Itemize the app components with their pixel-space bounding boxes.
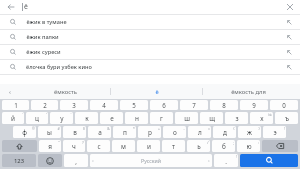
button[interactable]: Insert suggestion [278,45,300,59]
staticText: № [268,112,272,117]
button[interactable]: ф [13,126,36,138]
button[interactable]: Insert suggestion [278,60,300,74]
staticText: / [207,140,209,145]
button[interactable]: 4 [90,100,118,110]
button[interactable]: ш [175,112,198,124]
button[interactable]: ёлочка бури узбек кино [0,60,300,74]
button[interactable]: ж [238,126,261,138]
staticText: 3 [72,101,76,109]
button[interactable]: ёжик суреси [0,45,300,59]
button[interactable]: л [188,126,211,138]
button[interactable]: ь [187,140,210,152]
button[interactable]: ъ [275,112,298,124]
button[interactable]: о [163,126,186,138]
button[interactable]: 6 [150,100,178,110]
button[interactable]: ч [63,140,85,152]
staticText: 2 [43,101,47,109]
button[interactable]: т [162,140,185,152]
button[interactable]: ёжик в тумане [0,15,300,29]
staticText: + [158,126,160,131]
staticText: и [147,142,151,151]
button[interactable]: й [2,112,24,124]
staticText: ч [72,142,76,151]
button[interactable]: э [263,126,286,138]
staticText: х [260,114,264,123]
staticText: 5 [132,101,136,109]
staticText: к [85,114,89,123]
staticText: а [98,128,102,137]
button[interactable]: Insert suggestion [278,15,300,29]
button[interactable]: а [88,126,111,138]
button[interactable]: 2 [31,100,58,110]
button[interactable]: 3 [60,100,88,110]
button[interactable]: Clear query [280,0,300,14]
staticText: › [208,158,210,164]
button[interactable]: 7 [180,100,208,110]
button[interactable]: 1 [2,100,29,110]
button[interactable]: г [150,112,173,124]
button[interactable]: Back [0,0,22,14]
staticText: - [183,126,185,131]
staticText: ` [22,112,23,117]
button[interactable]: ы [38,126,61,138]
button[interactable]: 0 [270,100,298,110]
button[interactable]: з [225,112,248,124]
button[interactable]: п [113,126,136,138]
button[interactable]: Backspace [262,140,298,152]
button[interactable]: н [125,112,148,124]
button[interactable]: 123 [2,154,36,167]
button[interactable]: у [50,112,73,124]
staticText: $ [83,126,85,131]
button[interactable]: , [64,154,88,167]
staticText: , [75,157,77,165]
button[interactable]: . [214,154,238,167]
staticText: ёжик суреси [26,48,61,56]
button[interactable]: ёмкость [20,84,110,99]
button[interactable]: е [100,112,123,124]
staticText: л [198,128,202,137]
staticText: ! [284,126,285,131]
staticText: ‹ [92,158,94,164]
button[interactable]: Shift [2,140,37,152]
staticText: ъ [285,114,289,123]
button[interactable]: ё [111,84,202,99]
staticText: ‹ [9,88,11,96]
button[interactable]: ёжик палки [0,30,300,44]
button[interactable]: я [39,140,61,152]
staticText: Русский [141,157,161,164]
button[interactable]: 5 [120,100,148,110]
staticText: м [121,142,126,151]
button[interactable]: с [87,140,110,152]
button[interactable]: ёмкость для [203,84,294,99]
staticText: с [97,142,101,151]
button[interactable]: ю [237,140,260,152]
staticText: г [160,114,163,123]
button[interactable]: х [250,112,273,124]
button[interactable]: Search [240,154,298,167]
staticText: ф [22,128,27,137]
staticText: ё [155,88,159,96]
button[interactable]: щ [200,112,223,124]
button[interactable]: Insert suggestion [278,30,300,44]
staticText: в [73,128,77,137]
staticText: = [208,126,210,131]
button[interactable]: Русский [90,154,212,167]
button[interactable]: 9 [240,100,268,110]
button[interactable]: ц [26,112,48,124]
staticText: ёлочка бури узбек кино [26,63,92,71]
button[interactable]: к [75,112,98,124]
staticText: у [60,114,64,123]
staticText: т [172,142,175,151]
staticText: ' [46,112,47,117]
staticText: 0 [282,101,286,109]
button[interactable]: и [137,140,160,152]
button[interactable]: в [63,126,86,138]
staticText: ; [233,140,234,145]
button[interactable]: д [213,126,236,138]
button[interactable]: б [212,140,235,152]
button[interactable]: 8 [210,100,238,110]
button[interactable]: р [138,126,161,138]
button[interactable]: Emoji [38,154,62,167]
button[interactable]: м [112,140,135,152]
staticText: : [258,140,259,145]
